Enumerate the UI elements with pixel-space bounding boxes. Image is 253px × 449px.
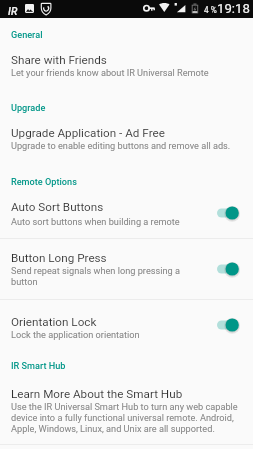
button[interactable] [0, 192, 253, 238]
staticText: Lock the application orientation [11, 329, 140, 340]
staticText: Let your friends know about IR Universal… [11, 67, 209, 78]
staticText: Share with Friends [11, 53, 107, 67]
staticText: IR [8, 5, 18, 17]
staticText: 4 % [204, 5, 217, 15]
staticText: Auto sort buttons when building a remote [11, 216, 180, 227]
button[interactable]: Toggle setting [215, 260, 242, 278]
staticText: Send repeat signals when long pressing a… [11, 265, 193, 287]
staticText: Orientation Lock [11, 315, 97, 329]
staticText: Button Long Press [11, 251, 107, 265]
button[interactable]: Toggle setting [215, 316, 242, 334]
button[interactable]: Toggle setting [215, 204, 242, 222]
staticText: Upgrade to enable editing buttons and re… [11, 140, 231, 151]
staticText: Use the IR Universal Smart Hub to turn a… [11, 401, 242, 434]
staticText: 19:18 [217, 1, 250, 16]
staticText: Remote Options [11, 177, 77, 188]
staticText: General [11, 30, 43, 41]
button[interactable] [0, 300, 253, 347]
staticText: Learn More About the Smart Hub [11, 387, 183, 401]
staticText: IR Smart Hub [11, 361, 66, 372]
staticText: Auto Sort Buttons [11, 200, 104, 214]
button[interactable] [0, 378, 253, 444]
staticText: Upgrade [11, 103, 46, 114]
button[interactable] [0, 239, 253, 299]
staticText: Upgrade Application - Ad Free [11, 126, 165, 140]
button[interactable] [0, 118, 253, 157]
button[interactable] [0, 45, 253, 84]
